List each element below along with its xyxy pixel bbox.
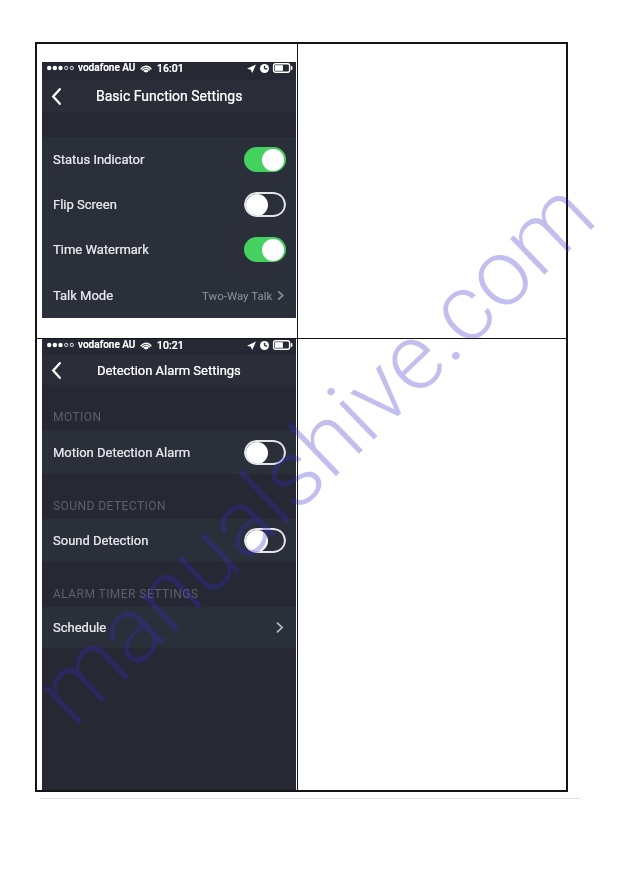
staticText: Status Indicator [53, 152, 145, 167]
button[interactable]: Time Watermark [42, 227, 296, 272]
staticText: ALARM TIMER SETTINGS [53, 587, 199, 601]
staticText: vodafone AU [78, 62, 136, 74]
staticText: manualshive.com [13, 158, 617, 747]
button[interactable]: Switch off [244, 528, 286, 553]
staticText: 10:21 [157, 339, 184, 351]
button[interactable]: Schedule [42, 607, 296, 648]
staticText: Time Watermark [53, 242, 149, 257]
staticText: Basic Function Settings [96, 88, 243, 104]
staticText: Detection Alarm Settings [97, 363, 241, 378]
staticText: vodafone AU [78, 339, 136, 351]
button[interactable]: Sound Detection [42, 519, 296, 562]
staticText: Two-Way Talk [202, 289, 273, 302]
button[interactable]: Motion Detection Alarm [42, 430, 296, 474]
staticText: Flip Screen [53, 197, 117, 212]
button[interactable]: Talk Mode [42, 272, 296, 318]
button[interactable]: Switch off [244, 192, 286, 217]
staticText: Talk Mode [53, 288, 114, 303]
button[interactable]: Switch on [244, 237, 286, 262]
staticText: MOTION [53, 410, 102, 424]
button[interactable]: Flip Screen [42, 182, 296, 227]
staticText: SOUND DETECTION [53, 499, 166, 513]
staticText: 16:01 [157, 62, 184, 74]
button[interactable]: Switch off [244, 440, 286, 465]
button[interactable]: Back [43, 357, 69, 383]
button[interactable]: Back [43, 83, 69, 109]
staticText: Sound Detection [53, 533, 149, 548]
button[interactable]: Status Indicator [42, 137, 296, 182]
staticText: Motion Detection Alarm [53, 445, 191, 460]
button[interactable]: Switch on [244, 147, 286, 172]
staticText: Schedule [53, 620, 107, 635]
